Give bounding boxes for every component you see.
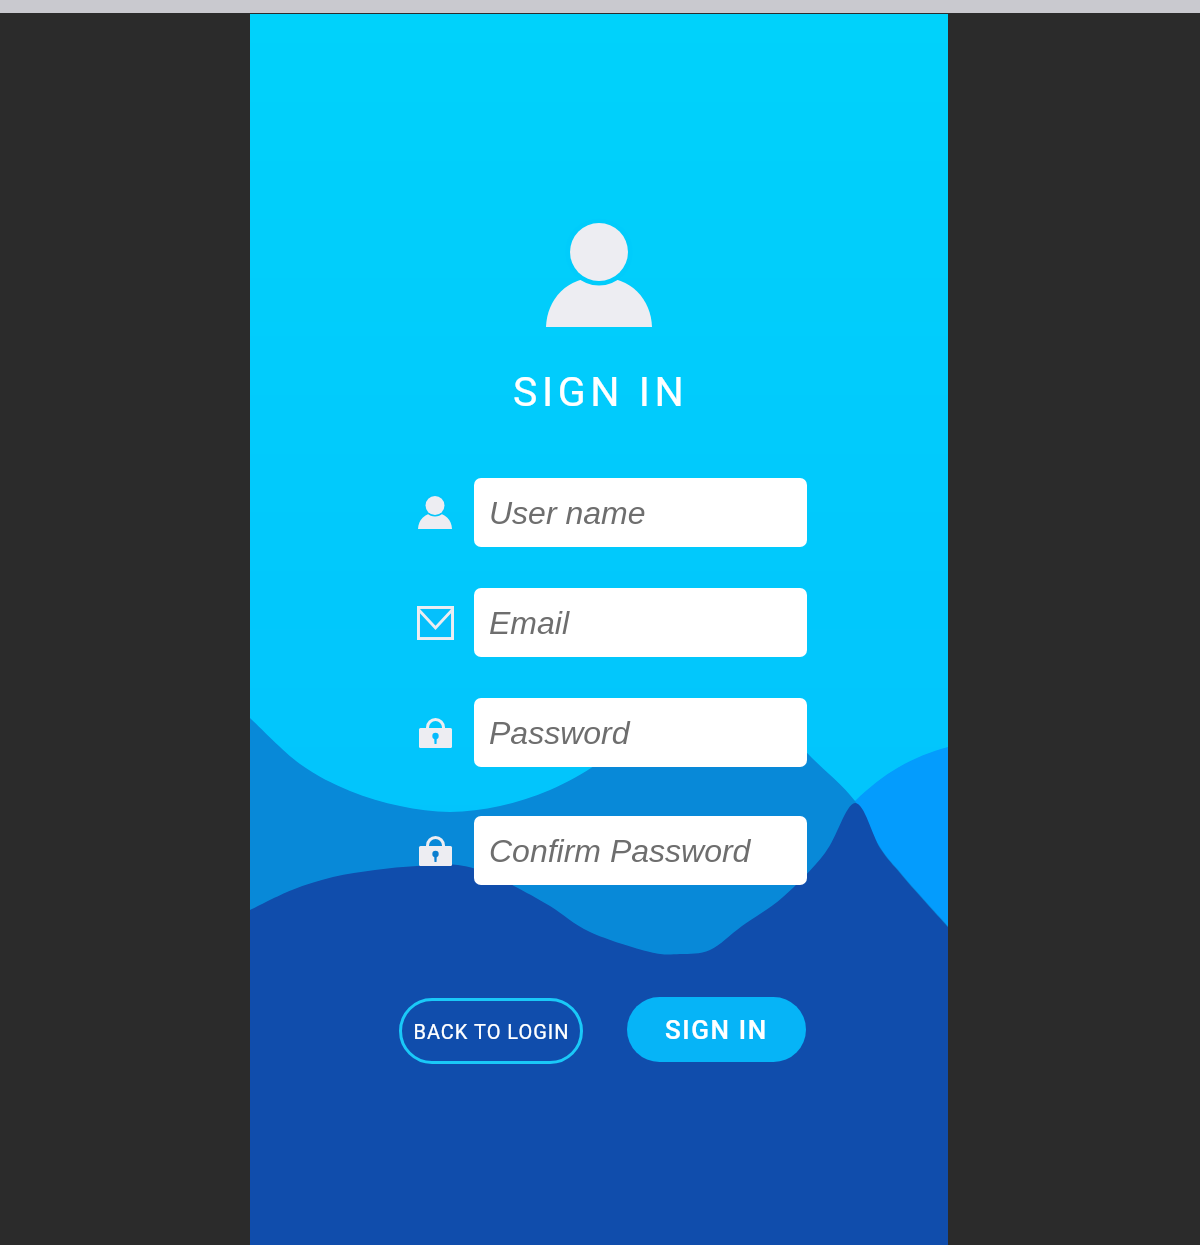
staticText: Confirm Password [489, 833, 751, 869]
staticText: SIGN IN [665, 1015, 768, 1045]
button[interactable]: BACK TO LOGIN [399, 998, 583, 1064]
staticText: BACK TO LOGIN [413, 1020, 570, 1043]
button[interactable]: SIGN IN [627, 997, 806, 1062]
button[interactable]: Password [474, 698, 807, 767]
staticText: User name [489, 495, 646, 531]
button[interactable]: Confirm Password [474, 816, 807, 885]
button[interactable]: User name [474, 478, 807, 547]
staticText: SIGN IN [513, 368, 689, 416]
button[interactable]: Email [474, 588, 807, 657]
staticText: Email [489, 605, 570, 641]
staticText: Password [489, 715, 630, 751]
